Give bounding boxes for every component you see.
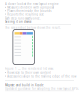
staticText: Seeing it on device — [5, 20, 32, 23]
staticText: A closer look at the new layout engine — [5, 2, 59, 6]
staticText: Updated guidance for adopting the new la… — [5, 87, 79, 90]
staticText: Rows size to their own content — [7, 71, 51, 74]
staticText: Reports the resulting size — [7, 13, 44, 16]
staticText: Each step runs exactly once. — [5, 17, 41, 20]
staticText: Measures children with a proposal — [7, 6, 54, 9]
staticText: Figure 1 — the rendered list view. — [5, 67, 54, 70]
staticText: Accessories align to the trailing edge o… — [7, 75, 76, 78]
staticText: Places them inside the bounds — [7, 9, 51, 13]
staticText: The screenshot below shows the result. — [5, 26, 61, 29]
staticText: Migrate and build in Xcode — [5, 83, 44, 87]
